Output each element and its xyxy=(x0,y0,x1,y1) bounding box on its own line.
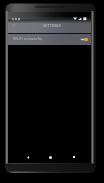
button[interactable]: Navigate up xyxy=(8,19,20,31)
button[interactable]: Back xyxy=(22,151,34,163)
button[interactable]: Toggle Wi-Fi xyxy=(78,34,90,45)
button[interactable]: Wi-Fi networks xyxy=(8,34,91,45)
staticText: Wi-Fi networks xyxy=(13,36,42,42)
button[interactable]: Recent apps xyxy=(68,151,80,163)
button[interactable]: Home xyxy=(44,151,56,163)
staticText: SETTINGS xyxy=(43,23,61,28)
